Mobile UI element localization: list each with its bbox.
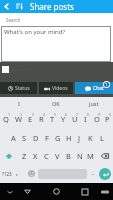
button[interactable]: S <box>19 129 30 147</box>
button[interactable]: Space <box>38 164 87 183</box>
button[interactable]: I <box>0 97 37 109</box>
staticText: 7 <box>76 112 79 117</box>
button[interactable]: D <box>30 129 41 147</box>
button[interactable]: Chat <box>75 82 113 94</box>
button[interactable]: T <box>47 109 58 129</box>
staticText: T <box>50 114 55 124</box>
button[interactable]: just <box>75 97 113 109</box>
button[interactable]: Y <box>58 109 69 129</box>
staticText: 1 <box>105 82 108 87</box>
staticText: H <box>66 133 72 143</box>
staticText: I <box>18 100 20 107</box>
staticText: R <box>39 114 44 124</box>
button[interactable]: Shift <box>0 147 18 164</box>
button[interactable]: N <box>74 147 85 164</box>
button[interactable]: Backspace <box>96 147 113 164</box>
button[interactable]: K <box>85 129 96 147</box>
button[interactable]: X <box>30 147 41 164</box>
button[interactable]: Q <box>0 109 12 129</box>
staticText: F <box>45 133 49 143</box>
staticText: X <box>33 151 38 161</box>
button[interactable]: R <box>36 109 47 129</box>
button[interactable]: OK <box>37 97 75 109</box>
button[interactable]: W <box>12 109 24 129</box>
staticText: 3 <box>32 112 35 117</box>
staticText: Z <box>22 151 27 161</box>
staticText: 4 <box>43 112 46 117</box>
staticText: C <box>44 151 49 161</box>
staticText: just <box>89 100 99 107</box>
staticText: 0 <box>109 112 112 117</box>
staticText: . <box>92 168 94 178</box>
staticText: P <box>105 114 110 124</box>
button[interactable]: J <box>74 129 85 147</box>
staticText: S <box>22 133 27 143</box>
button[interactable]: B <box>63 147 74 164</box>
button[interactable]: ?123 <box>0 164 13 183</box>
staticText: Status <box>15 85 30 92</box>
staticText: G <box>55 133 61 143</box>
staticText: V <box>55 151 60 161</box>
button[interactable]: Emoji <box>26 164 37 183</box>
staticText: E <box>28 114 33 124</box>
button[interactable]: Videos <box>39 82 73 94</box>
staticText: Videos <box>52 85 68 92</box>
staticText: A <box>11 133 16 143</box>
button[interactable]: Recents <box>76 183 94 200</box>
button[interactable]: O <box>91 109 102 129</box>
button[interactable]: Home <box>46 183 66 200</box>
staticText: OK <box>52 100 60 107</box>
staticText: B <box>66 151 71 161</box>
staticText: Chat <box>93 85 104 92</box>
button[interactable]: Back <box>0 0 13 13</box>
button[interactable]: , <box>13 164 26 183</box>
button[interactable]: H <box>63 129 74 147</box>
staticText: , <box>16 168 18 178</box>
staticText: Share posts <box>30 1 74 12</box>
staticText: 2 <box>20 112 23 117</box>
button[interactable]: A <box>7 129 19 147</box>
button[interactable]: I <box>80 109 91 129</box>
button[interactable]: Hide keyboard <box>0 183 19 200</box>
staticText: Search <box>6 17 21 23</box>
staticText: N <box>77 151 83 161</box>
button[interactable]: What's on your mind? <box>1 26 111 62</box>
button[interactable]: L <box>96 129 107 147</box>
staticText: W <box>15 114 22 124</box>
button[interactable]: P <box>102 109 113 129</box>
button[interactable]: . <box>88 164 97 183</box>
staticText: I <box>84 114 87 124</box>
button[interactable]: Z <box>18 147 30 164</box>
staticText: 1 <box>8 112 11 117</box>
staticText: J <box>78 133 81 143</box>
button[interactable]: M <box>85 147 96 164</box>
staticText: 8 <box>87 112 90 117</box>
button[interactable]: Status <box>0 82 37 94</box>
staticText: O <box>94 114 100 124</box>
button[interactable]: Back <box>19 183 36 200</box>
button[interactable]: E <box>24 109 36 129</box>
button[interactable]: V <box>52 147 63 164</box>
button[interactable]: Enter <box>97 164 113 183</box>
staticText: K <box>88 133 93 143</box>
button[interactable]: U <box>69 109 80 129</box>
staticText: 9 <box>98 112 101 117</box>
staticText: U <box>72 114 78 124</box>
staticText: L <box>100 133 104 143</box>
staticText: Y <box>61 114 66 124</box>
staticText: D <box>33 133 39 143</box>
button[interactable]: F <box>41 129 52 147</box>
button[interactable]: Sort <box>13 0 26 13</box>
staticText: ?123 <box>2 171 12 177</box>
staticText: 5 <box>54 112 57 117</box>
staticText: What's on your mind? <box>4 28 66 36</box>
button[interactable]: G <box>52 129 63 147</box>
staticText: 6 <box>65 112 68 117</box>
button[interactable]: Search <box>0 13 113 26</box>
button[interactable]: Switch keyboard <box>97 183 113 200</box>
staticText: Q <box>3 114 9 124</box>
button[interactable]: C <box>41 147 52 164</box>
staticText: M <box>87 151 94 161</box>
